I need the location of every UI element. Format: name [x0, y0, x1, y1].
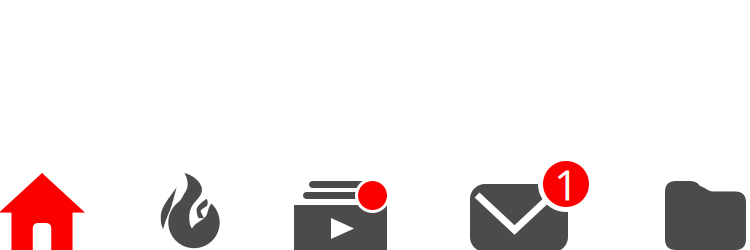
staticText: 1	[554, 156, 578, 212]
button[interactable]: Files	[665, 0, 750, 250]
button[interactable]: Home	[0, 0, 148, 250]
button[interactable]: Trending	[155, 0, 301, 250]
button[interactable]: Videos	[294, 0, 470, 250]
button[interactable]: Mail	[470, 0, 664, 250]
